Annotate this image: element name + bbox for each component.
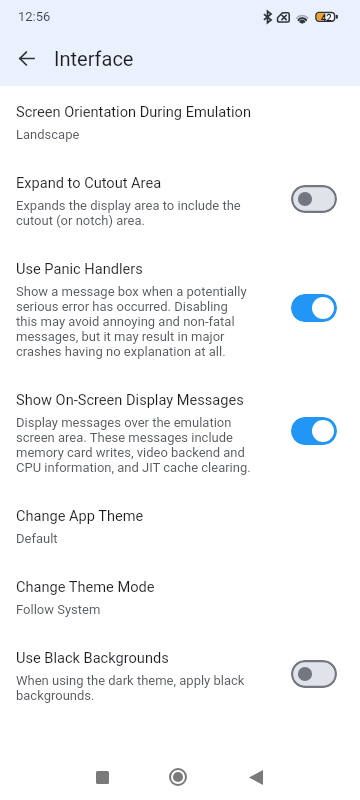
staticText: Expands the display area to include the … [16,198,241,228]
staticText: Expand to Cutout Area [16,174,162,191]
staticText: 12:56 [18,9,51,24]
staticText: 42 [321,12,332,23]
staticText: Show a message box when a potentially se… [16,284,247,359]
staticText: Use Panic Handlers [16,260,143,277]
button[interactable]: Disabled [291,185,337,213]
button[interactable]: Disabled [291,660,337,688]
staticText: When using the dark theme, apply black b… [16,673,245,703]
button[interactable]: Enabled [291,417,337,445]
staticText: Follow System [16,602,101,617]
staticText: Landscape [16,127,80,142]
staticText: Show On-Screen Display Messages [16,391,244,408]
staticText: Change Theme Mode [16,578,155,595]
button[interactable]: Home [154,762,202,792]
staticText: Use Black Backgrounds [16,649,169,666]
staticText: Interface [54,47,134,70]
staticText: Display messages over the emulation scre… [16,415,251,475]
button[interactable]: Enabled [291,294,337,322]
staticText: Change App Theme [16,507,144,524]
button[interactable]: Back [232,762,280,792]
staticText: Default [16,531,58,546]
staticText: Screen Orientation During Emulation [16,103,251,120]
button[interactable]: Recent apps [78,762,126,792]
button[interactable]: Back [8,40,44,76]
